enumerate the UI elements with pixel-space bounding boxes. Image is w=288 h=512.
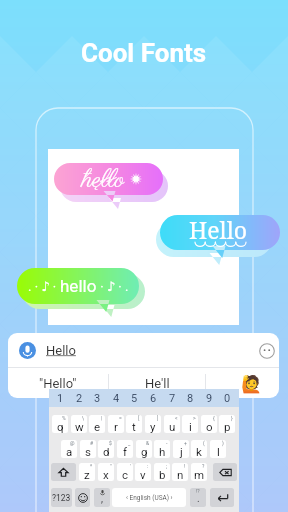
button[interactable]: : [135, 463, 151, 481]
button[interactable]: > [182, 415, 198, 433]
button[interactable]: ; [154, 463, 170, 481]
staticText: 1 [57, 392, 64, 405]
button[interactable]: } [219, 415, 235, 433]
staticText: ħęłło [82, 163, 125, 197]
staticText: hello [60, 276, 97, 296]
staticText: r [114, 420, 118, 433]
staticText: Cool Fonts [81, 38, 207, 68]
staticText: | [101, 415, 103, 421]
button[interactable]: { [201, 415, 217, 433]
staticText: f [123, 445, 127, 458]
staticText: % [62, 415, 66, 421]
button[interactable]: Emoji keyboard [75, 488, 90, 507]
staticText: $ [109, 440, 112, 446]
staticText: i [189, 420, 192, 433]
staticText: 5 [131, 392, 138, 405]
staticText: { [213, 415, 215, 421]
staticText: & [146, 440, 150, 446]
staticText: l [217, 445, 220, 458]
staticText: 0 [224, 392, 231, 405]
staticText: 8 [187, 392, 194, 405]
staticText: # [90, 440, 94, 446]
button[interactable]: ) [210, 440, 226, 458]
staticText: [ [138, 415, 140, 421]
staticText: + [184, 440, 187, 446]
staticText: q [57, 420, 64, 433]
staticText: 9 [206, 392, 213, 405]
staticText: p [224, 420, 231, 433]
staticText: 7 [169, 392, 176, 405]
staticText: " [110, 463, 112, 469]
button[interactable]: Emoji suggestion [206, 368, 279, 398]
staticText: b [159, 468, 166, 481]
button[interactable]: "Hello" [8, 368, 108, 398]
staticText: , [101, 493, 103, 505]
staticText: m [194, 468, 205, 481]
staticText: He'll [145, 376, 170, 391]
button[interactable]: He'll [109, 368, 205, 398]
button[interactable]: Backspace [213, 463, 237, 481]
button[interactable]: [ [126, 415, 142, 433]
staticText: > [193, 415, 196, 421]
staticText: d [103, 445, 110, 458]
staticText: 3 [94, 392, 101, 405]
staticText: * [90, 463, 93, 469]
staticText: } [231, 415, 233, 421]
staticText: ?123 [52, 493, 71, 503]
staticText: Hello [46, 343, 76, 358]
button[interactable]: Emoji [259, 343, 275, 359]
staticText: u [169, 420, 176, 433]
staticText: n [177, 468, 184, 481]
button[interactable]: < [164, 415, 180, 433]
staticText: s [85, 445, 91, 458]
staticText: _ [128, 440, 131, 446]
staticText: . [197, 493, 200, 505]
button[interactable]: + [173, 440, 189, 458]
button[interactable]: _ [117, 440, 133, 458]
button[interactable]: & [136, 440, 152, 458]
button[interactable]: Shift [51, 463, 76, 481]
button[interactable]: ! [172, 463, 188, 481]
staticText: ; [166, 463, 168, 469]
staticText: < [175, 415, 178, 421]
button[interactable]: ] [145, 415, 161, 433]
button[interactable]: Enter [210, 488, 234, 507]
button[interactable]: # [80, 440, 96, 458]
staticText: g [141, 445, 148, 458]
button[interactable]: $ [98, 440, 114, 458]
button[interactable]: " [98, 463, 114, 481]
button[interactable]: \ [71, 415, 87, 433]
button[interactable]: ‹ English (USA) › [112, 488, 186, 507]
button[interactable]: = [108, 415, 124, 433]
staticText: · ♪ · . [97, 279, 129, 294]
staticText: ! [184, 463, 186, 469]
button[interactable]: - [154, 440, 170, 458]
button[interactable]: @ [61, 440, 77, 458]
staticText: a [66, 445, 73, 458]
staticText: e [94, 420, 101, 433]
staticText: - [166, 440, 168, 446]
button[interactable]: Voice input [19, 342, 36, 359]
staticText: = [119, 415, 122, 421]
staticText: x [103, 468, 109, 481]
button[interactable]: * [79, 463, 95, 481]
staticText: ‹ English (USA) › [126, 494, 173, 502]
staticText: y [150, 420, 156, 433]
button[interactable]: | [89, 415, 105, 433]
staticText: k [196, 445, 202, 458]
staticText: ( [203, 440, 205, 446]
button[interactable]: Symbols [51, 488, 72, 507]
button[interactable]: ' [117, 463, 133, 481]
staticText: : [147, 463, 149, 469]
button[interactable]: ? [191, 463, 207, 481]
staticText: w [75, 420, 84, 433]
staticText: Hello [189, 214, 248, 245]
button[interactable]: ( [191, 440, 207, 458]
staticText: ? [202, 463, 205, 469]
button[interactable]: !? [190, 488, 206, 507]
button[interactable]: Voice input [8, 333, 279, 367]
button[interactable]: % [52, 415, 68, 433]
button[interactable]: Comma [94, 488, 110, 507]
staticText: 4 [113, 392, 120, 405]
staticText: ' [130, 463, 131, 469]
